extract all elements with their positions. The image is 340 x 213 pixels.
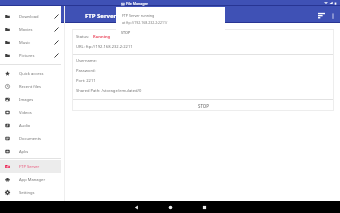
button[interactable]: Sort (316, 10, 327, 21)
staticText: Quick access (19, 71, 44, 77)
button[interactable]: Recents (195, 201, 213, 213)
button[interactable]: Quick access (0, 67, 61, 80)
staticText: Music (19, 40, 31, 46)
button[interactable]: STOP (72, 100, 334, 111)
staticText: Recent files (19, 84, 41, 90)
staticText: Audio (19, 123, 31, 129)
button[interactable]: Movies (0, 23, 61, 36)
button[interactable]: Back (127, 201, 145, 213)
button[interactable]: Recent files (0, 80, 61, 93)
button[interactable]: Pictures (0, 49, 61, 62)
staticText: Settings (19, 190, 35, 196)
button[interactable]: Settings (0, 186, 61, 199)
button[interactable]: Documents (0, 132, 61, 145)
button[interactable]: Videos (0, 106, 61, 119)
button[interactable]: More options (327, 10, 338, 21)
staticText: FTP Server (85, 12, 117, 20)
staticText: Running (93, 34, 111, 40)
staticText: at ftp://192.168.232.2:2211/ (122, 20, 168, 25)
button[interactable]: Home (161, 201, 179, 213)
staticText: Apks (19, 149, 29, 155)
staticText: STOP (198, 103, 209, 109)
button[interactable]: Download (0, 10, 61, 23)
staticText: Shared Path: /storage/emulated/0 (76, 88, 142, 94)
staticText: Videos (19, 110, 32, 116)
staticText: Pictures (19, 53, 35, 59)
staticText: Documents (19, 136, 42, 142)
staticText: FTP Server (19, 164, 40, 170)
staticText: Port: 2211 (76, 78, 96, 84)
staticText: STOP (121, 30, 131, 35)
staticText: Images (19, 97, 34, 103)
staticText: FTP Server running (122, 13, 155, 18)
staticText: Username: (76, 58, 98, 64)
staticText: Status: (76, 34, 90, 40)
button[interactable]: Music (0, 36, 61, 49)
staticText: File Manager (126, 1, 148, 6)
staticText: Movies (19, 27, 33, 33)
staticText: Password: (76, 68, 96, 74)
staticText: Download (19, 14, 39, 20)
staticText: App Manager (19, 177, 46, 183)
button[interactable]: FTP Server (0, 160, 61, 173)
staticText: URL: ftp://192.168.232.2:2211 (76, 44, 133, 50)
button[interactable]: App Manager (0, 173, 61, 186)
button[interactable]: Images (0, 93, 61, 106)
button[interactable]: Apks (0, 145, 61, 158)
button[interactable]: Audio (0, 119, 61, 132)
button[interactable]: STOP (116, 30, 135, 35)
